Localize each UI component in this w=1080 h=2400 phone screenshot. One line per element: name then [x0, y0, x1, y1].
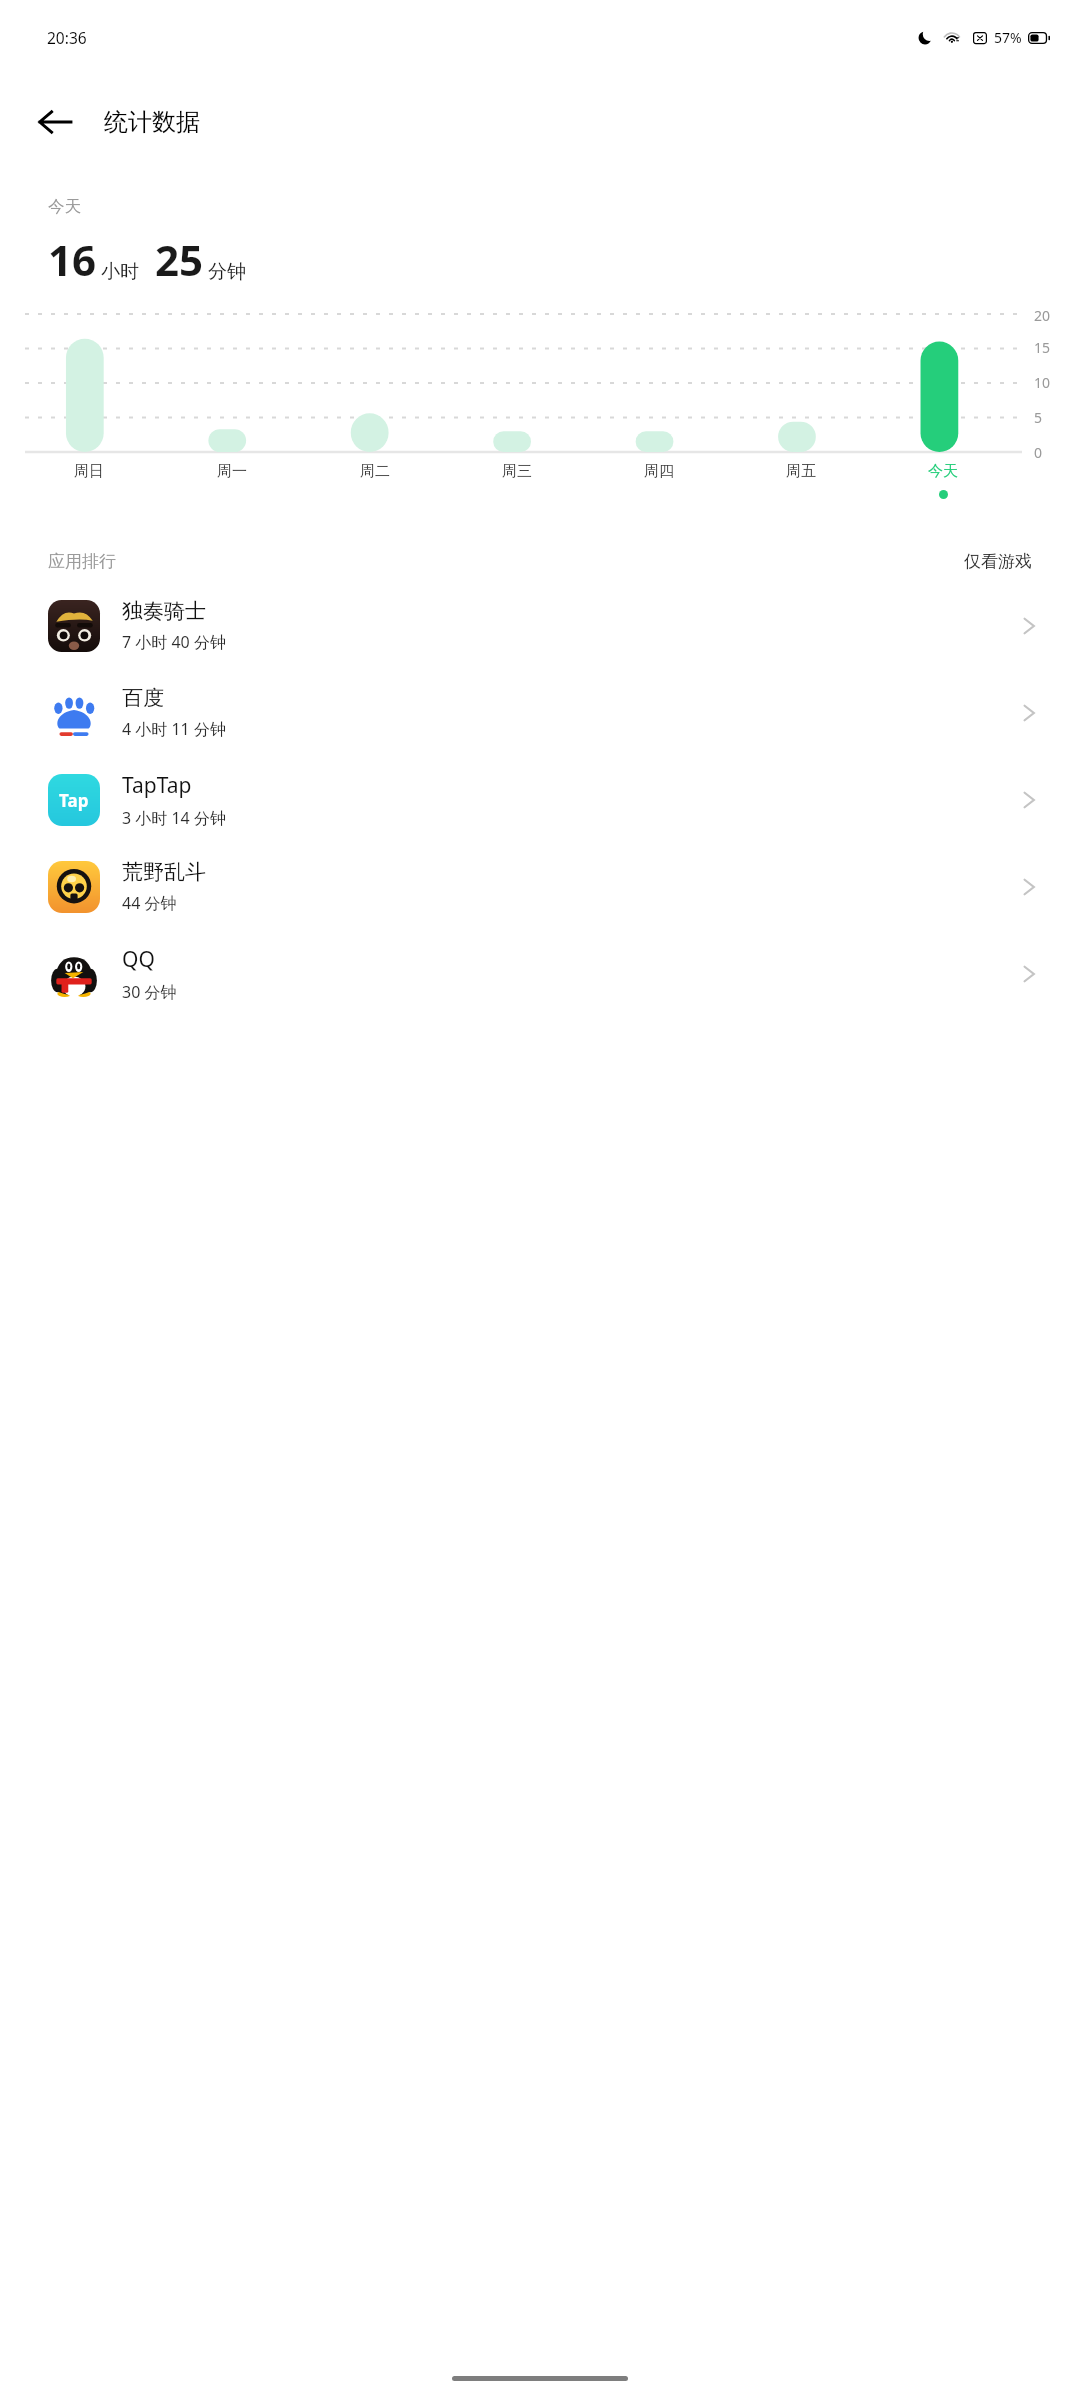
- staticText: 今天: [928, 462, 958, 481]
- staticText: 独奏骑士: [122, 598, 206, 624]
- staticText: 7 小时 40 分钟: [122, 631, 226, 653]
- staticText: 周三: [502, 462, 532, 481]
- staticText: 25: [155, 231, 204, 288]
- staticText: 应用排行: [48, 551, 116, 572]
- staticText: 分钟: [208, 260, 246, 284]
- staticText: 仅看游戏: [964, 551, 1032, 572]
- staticText: 周一: [217, 462, 247, 481]
- staticText: 今天: [48, 196, 81, 217]
- staticText: 57%: [994, 28, 1022, 47]
- staticText: TapTap: [122, 771, 192, 800]
- staticText: 4 小时 11 分钟: [122, 718, 226, 740]
- staticText: 荒野乱斗: [122, 859, 206, 885]
- staticText: 小时: [101, 260, 139, 284]
- staticText: 44 分钟: [122, 892, 177, 914]
- button[interactable]: QQ: [0, 930, 1080, 1017]
- staticText: 15: [1034, 338, 1051, 357]
- button[interactable]: 荒野乱斗: [0, 843, 1080, 930]
- staticText: 周日: [74, 462, 104, 481]
- staticText: 周四: [644, 462, 674, 481]
- staticText: 统计数据: [104, 107, 200, 137]
- button[interactable]: 独奏骑士: [0, 582, 1080, 669]
- staticText: 百度: [122, 685, 164, 711]
- staticText: 20:36: [47, 27, 87, 48]
- staticText: 16: [48, 231, 97, 288]
- staticText: QQ: [122, 945, 155, 974]
- staticText: 0: [1034, 443, 1043, 460]
- button[interactable]: 返回: [22, 89, 88, 155]
- staticText: 10: [1034, 373, 1051, 392]
- staticText: 3 小时 14 分钟: [122, 807, 226, 829]
- button[interactable]: 百度: [0, 669, 1080, 756]
- staticText: 周二: [360, 462, 390, 481]
- button[interactable]: 仅看游戏: [964, 551, 1032, 572]
- button[interactable]: Tap: [0, 756, 1080, 843]
- staticText: 5: [1034, 408, 1043, 427]
- staticText: 30 分钟: [122, 981, 177, 1003]
- staticText: Tap: [59, 789, 89, 812]
- staticText: 20: [1034, 306, 1051, 322]
- staticText: 周五: [786, 462, 816, 481]
